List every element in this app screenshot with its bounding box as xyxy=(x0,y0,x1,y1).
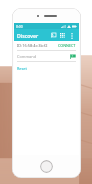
button[interactable]: Send command xyxy=(69,53,76,60)
staticText: Discover xyxy=(17,32,39,39)
button[interactable]: ID:16:58:4c:3b:f2 xyxy=(14,41,79,50)
staticText: Command xyxy=(17,54,37,59)
staticText: ID:16:58:4c:3b:f2 xyxy=(17,43,48,48)
button[interactable]: Devices xyxy=(58,31,67,40)
button[interactable]: More options xyxy=(67,31,76,40)
button[interactable]: Reset xyxy=(14,65,30,72)
button[interactable]: Command xyxy=(14,51,79,61)
staticText: CONNECT xyxy=(58,43,76,48)
button[interactable]: Cast xyxy=(49,31,58,40)
staticText: Reset xyxy=(17,66,27,71)
staticText: 8:00 xyxy=(16,24,23,29)
